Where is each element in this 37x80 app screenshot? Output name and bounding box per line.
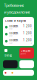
staticText: Вклад xyxy=(4,54,12,57)
staticText: 1 200 xyxy=(23,38,32,42)
staticText: 1 200 xyxy=(23,24,32,28)
button[interactable]: Платёж xyxy=(5,24,32,30)
staticText: ₽ xyxy=(31,35,32,37)
staticText: Платёж xyxy=(9,38,18,42)
staticText: 1 200 xyxy=(23,31,32,35)
staticText: Счета и карты xyxy=(5,19,26,22)
staticText: ₽ xyxy=(31,42,32,44)
button[interactable]: Вклад xyxy=(3,48,18,59)
staticText: Счёт xyxy=(9,35,13,37)
button[interactable]: Скидки xyxy=(19,48,34,59)
staticText: до 30% xyxy=(21,53,26,55)
button[interactable]: Платёж xyxy=(5,31,32,37)
staticText: Счёт xyxy=(9,28,13,30)
staticText: Скидки xyxy=(21,49,31,52)
staticText: Требования xyxy=(4,3,24,8)
staticText: Платёж xyxy=(9,31,18,35)
staticText: Платёж xyxy=(9,24,18,28)
staticText: и уведомления xyxy=(4,9,30,15)
button[interactable]: Promo xyxy=(19,60,34,68)
staticText: Счёт xyxy=(9,42,13,44)
button[interactable]: Shortcuts xyxy=(3,70,34,76)
button[interactable]: Promo xyxy=(3,60,18,68)
button[interactable]: Платёж xyxy=(5,38,32,44)
staticText: ₽ xyxy=(31,28,32,30)
